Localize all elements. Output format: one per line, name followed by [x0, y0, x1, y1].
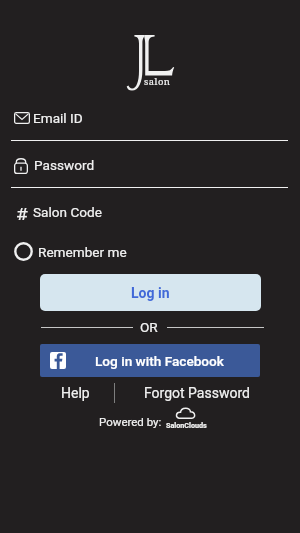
- button[interactable]: Forgot Password: [132, 383, 262, 403]
- button[interactable]: Password: [6, 151, 300, 181]
- staticText: Powered by:: [99, 415, 162, 428]
- staticText: Email ID: [33, 110, 83, 126]
- staticText: Salon Code: [33, 204, 102, 220]
- staticText: #: [16, 203, 28, 220]
- staticText: Log in with Facebook: [95, 353, 224, 369]
- button[interactable]: Log in: [40, 274, 261, 311]
- staticText: Help: [61, 385, 90, 401]
- staticText: OR: [140, 319, 158, 335]
- button[interactable]: Log in with Facebook: [40, 344, 260, 377]
- staticText: Password: [34, 157, 95, 173]
- button[interactable]: Remember me: [8, 237, 148, 265]
- staticText: Forgot Password: [144, 385, 250, 401]
- staticText: SalonClouds: [166, 421, 207, 429]
- button[interactable]: Help: [50, 383, 100, 403]
- staticText: Remember me: [38, 244, 127, 260]
- staticText: salon: [144, 75, 171, 88]
- button[interactable]: Email ID: [6, 104, 300, 134]
- button[interactable]: #: [6, 198, 300, 228]
- staticText: Log in: [131, 285, 170, 301]
